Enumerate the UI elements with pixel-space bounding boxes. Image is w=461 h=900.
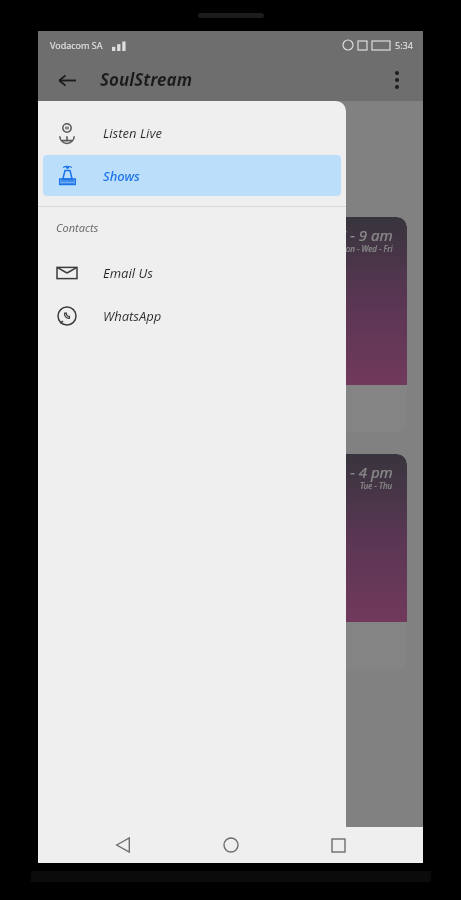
staticText: Listen Live [103, 124, 163, 142]
staticText: Email Us [103, 264, 153, 282]
button[interactable]: More options [377, 60, 417, 100]
button[interactable]: Home [209, 827, 253, 863]
button[interactable]: Back [101, 827, 145, 863]
staticText: SoulStream [100, 68, 193, 91]
staticText: 2 - 4 pm [338, 462, 393, 482]
staticText: Shows [103, 167, 140, 185]
staticText: Schedule [58, 105, 211, 151]
button[interactable]: Email Us [43, 252, 341, 293]
staticText: Thu [112, 173, 136, 191]
button[interactable]: WhatsApp [43, 295, 341, 336]
staticText: Mon - Wed - Fri [339, 243, 393, 254]
staticText: Wed [58, 173, 86, 191]
button[interactable]: Back [46, 60, 86, 100]
staticText: Contacts [56, 220, 99, 235]
button[interactable]: Shows [43, 155, 341, 196]
button[interactable]: Recent apps [316, 827, 360, 863]
staticText: 5:34 [395, 39, 413, 51]
button[interactable]: Listen Live [43, 112, 341, 153]
staticText: Vodacom SA [50, 39, 103, 51]
staticText: 7 - 9 am [338, 225, 393, 245]
button[interactable]: 2 - 4 pm [54, 454, 407, 669]
staticText: WhatsApp [103, 307, 162, 325]
button[interactable]: 7 - 9 am [54, 217, 407, 432]
staticText: Tue - Thu [360, 480, 393, 491]
staticText: Last [64, 316, 127, 357]
